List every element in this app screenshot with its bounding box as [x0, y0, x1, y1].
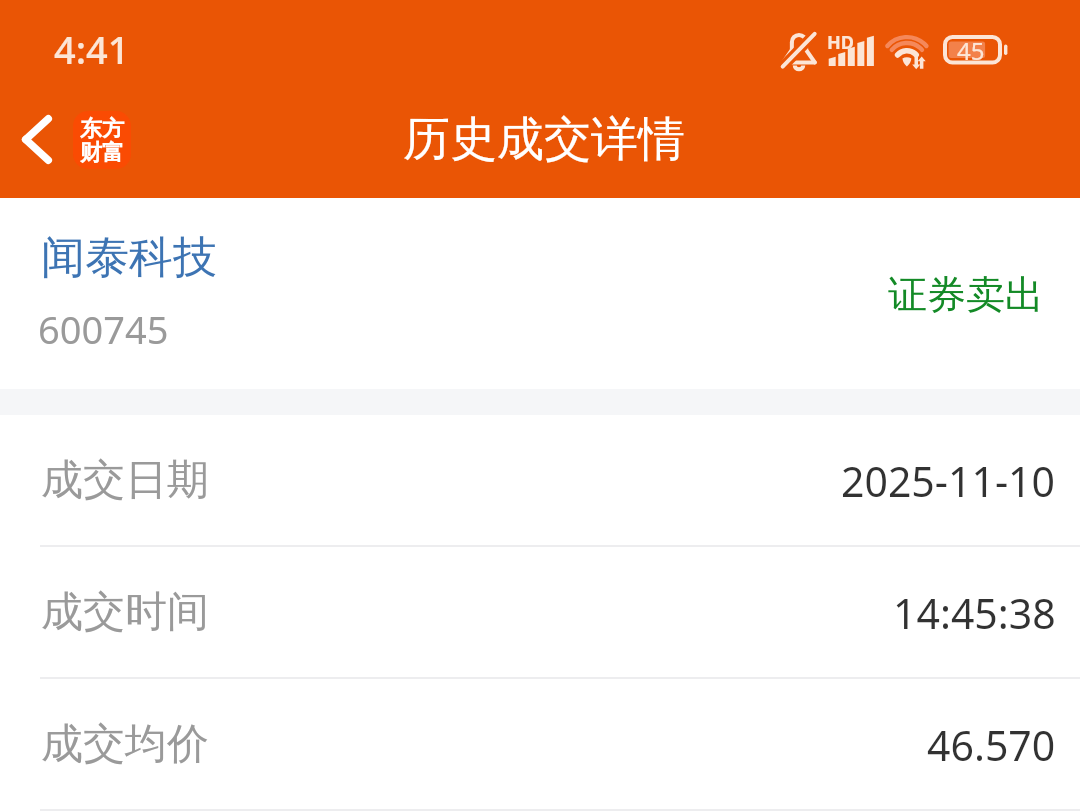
button[interactable]: 成交均价 — [0, 679, 1080, 810]
staticText: 600745 — [38, 303, 169, 355]
staticText: 成交时间 — [41, 586, 209, 639]
staticText: 2025-11-10 — [841, 453, 1056, 509]
staticText: 历史成交详情 — [403, 110, 685, 169]
staticText: 成交均价 — [41, 718, 209, 771]
staticText: 证券卖出 — [888, 270, 1044, 319]
button[interactable]: East Money logo — [73, 111, 131, 169]
staticText: 45 — [957, 34, 985, 64]
button[interactable]: 成交时间 — [0, 547, 1080, 678]
staticText: 46.570 — [927, 717, 1056, 773]
staticText: HD — [827, 30, 854, 55]
button[interactable]: 闻泰科技 — [0, 198, 1080, 389]
staticText: 14:45:38 — [893, 585, 1056, 641]
staticText: 成交日期 — [41, 454, 209, 507]
button[interactable]: Back — [8, 102, 68, 178]
button[interactable]: 成交日期 — [0, 415, 1080, 546]
staticText: 4:41 — [54, 23, 130, 75]
staticText: 东方 财富 — [80, 115, 124, 166]
staticText: 闻泰科技 — [41, 230, 217, 285]
